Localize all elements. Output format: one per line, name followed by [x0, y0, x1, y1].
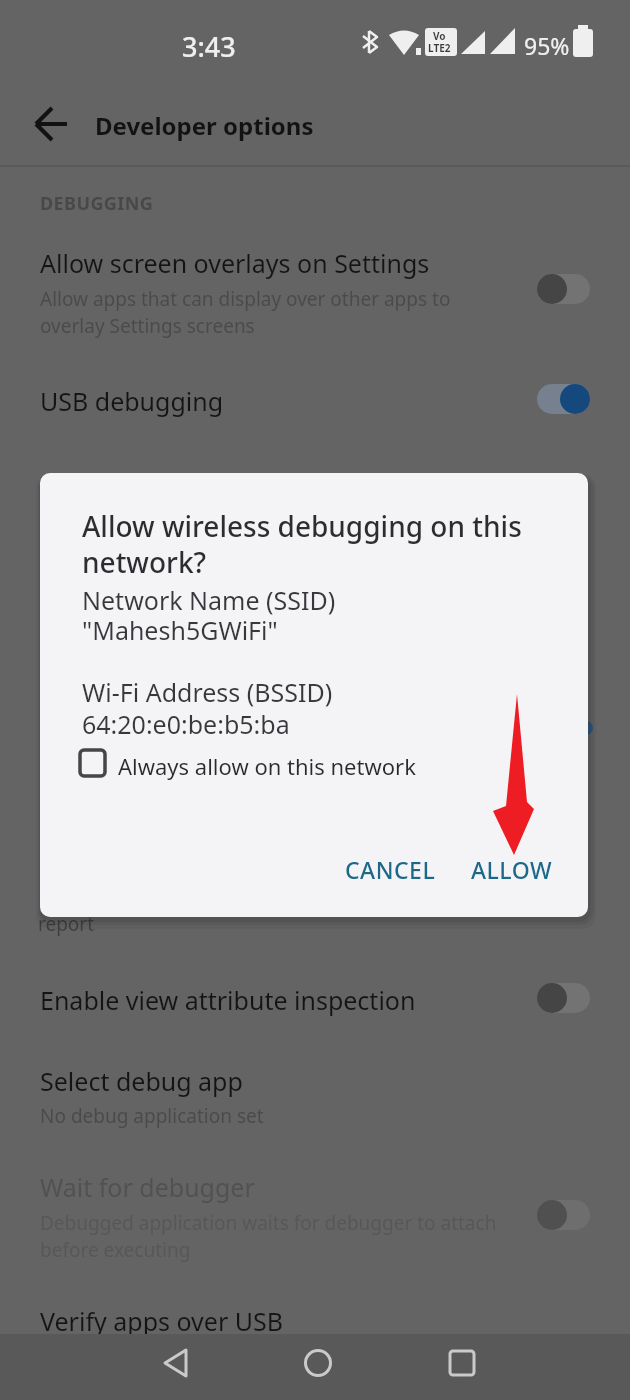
staticText: USB debugging	[40, 384, 224, 418]
button[interactable]	[70, 741, 400, 785]
button[interactable]	[537, 384, 590, 414]
staticText: Always allow on this network	[118, 751, 416, 781]
button[interactable]	[334, 838, 450, 898]
staticText: Allow screen overlays on Settings	[40, 246, 430, 280]
button[interactable]	[432, 1334, 492, 1400]
staticText: No debug application set	[40, 1103, 264, 1129]
staticText: ALLOW	[471, 854, 553, 885]
staticText: 64:20:e0:be:b5:ba	[82, 707, 290, 741]
staticText: Wait for debugger	[40, 1170, 255, 1204]
staticText: Wi-Fi Address (BSSID)	[82, 675, 333, 709]
staticText: Vo	[433, 29, 446, 43]
staticText: Network Name (SSID)	[82, 583, 336, 617]
button[interactable]	[537, 983, 590, 1013]
staticText: DEBUGGING	[40, 191, 154, 216]
staticText: "Mahesh5GWiFi"	[82, 613, 278, 647]
button[interactable]	[0, 370, 630, 430]
staticText: Allow apps that can display over other a…	[40, 286, 451, 312]
staticText: 3:43	[182, 28, 236, 65]
button[interactable]	[0, 1155, 630, 1270]
staticText: LTE2	[428, 41, 451, 55]
button[interactable]	[0, 1050, 630, 1135]
staticText: overlay Settings screens	[40, 313, 255, 339]
button[interactable]	[0, 965, 630, 1031]
button[interactable]	[0, 230, 630, 360]
staticText: Verify apps over USB	[40, 1304, 283, 1338]
button[interactable]	[288, 1334, 348, 1400]
staticText: 95%	[524, 30, 570, 61]
staticText: report	[38, 911, 95, 937]
button[interactable]	[462, 838, 566, 898]
staticText: Debugged application waits for debugger …	[40, 1210, 497, 1236]
button[interactable]	[537, 1200, 590, 1230]
staticText: CANCEL	[345, 854, 436, 885]
button[interactable]	[537, 274, 590, 304]
staticText: Allow wireless debugging on this network…	[82, 507, 522, 581]
staticText: before executing	[40, 1237, 191, 1263]
button[interactable]	[145, 1334, 205, 1400]
staticText: Developer options	[95, 109, 314, 142]
staticText: Select debug app	[40, 1064, 243, 1098]
button[interactable]	[20, 95, 80, 153]
staticText: Enable view attribute inspection	[40, 983, 416, 1017]
